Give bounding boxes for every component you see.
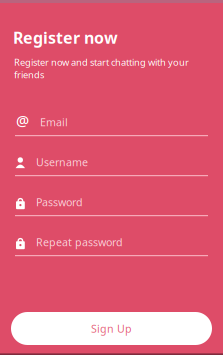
- staticText: Repeat password: [36, 235, 123, 249]
- staticText: Username: [36, 155, 88, 169]
- staticText: Sign Up: [91, 321, 132, 336]
- button[interactable]: Repeat password: [15, 225, 208, 265]
- staticText: Register now: [13, 27, 118, 48]
- staticText: Email: [40, 115, 68, 129]
- staticText: Password: [36, 195, 83, 209]
- staticText: @: [16, 110, 29, 130]
- button[interactable]: Username: [15, 145, 208, 185]
- button[interactable]: Password: [15, 185, 208, 225]
- staticText: Register now and start chatting with you…: [14, 56, 189, 81]
- button[interactable]: @: [15, 105, 208, 145]
- button[interactable]: Sign Up: [11, 312, 212, 345]
